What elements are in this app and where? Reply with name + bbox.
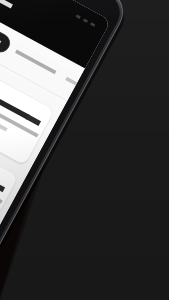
button[interactable]: Food delivery app promotional screen (0, 0, 169, 300)
